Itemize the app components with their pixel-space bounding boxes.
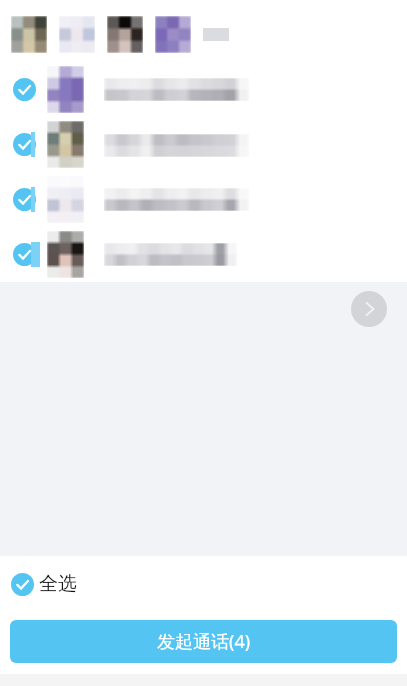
button[interactable]: Next page: [351, 291, 387, 327]
staticText: 全选: [39, 572, 77, 596]
button[interactable]: [0, 62, 407, 117]
button[interactable]: [0, 117, 407, 172]
button[interactable]: Selected contact: [11, 16, 47, 53]
button[interactable]: Selected contact: [155, 16, 191, 53]
staticText: 发起通话(4): [157, 629, 251, 654]
button[interactable]: [0, 172, 407, 227]
button[interactable]: 发起通话(4): [10, 620, 397, 663]
button[interactable]: Selected contact: [59, 16, 95, 53]
button[interactable]: 全选: [11, 572, 77, 596]
button[interactable]: Selected contact: [107, 16, 143, 53]
button[interactable]: [0, 227, 407, 282]
